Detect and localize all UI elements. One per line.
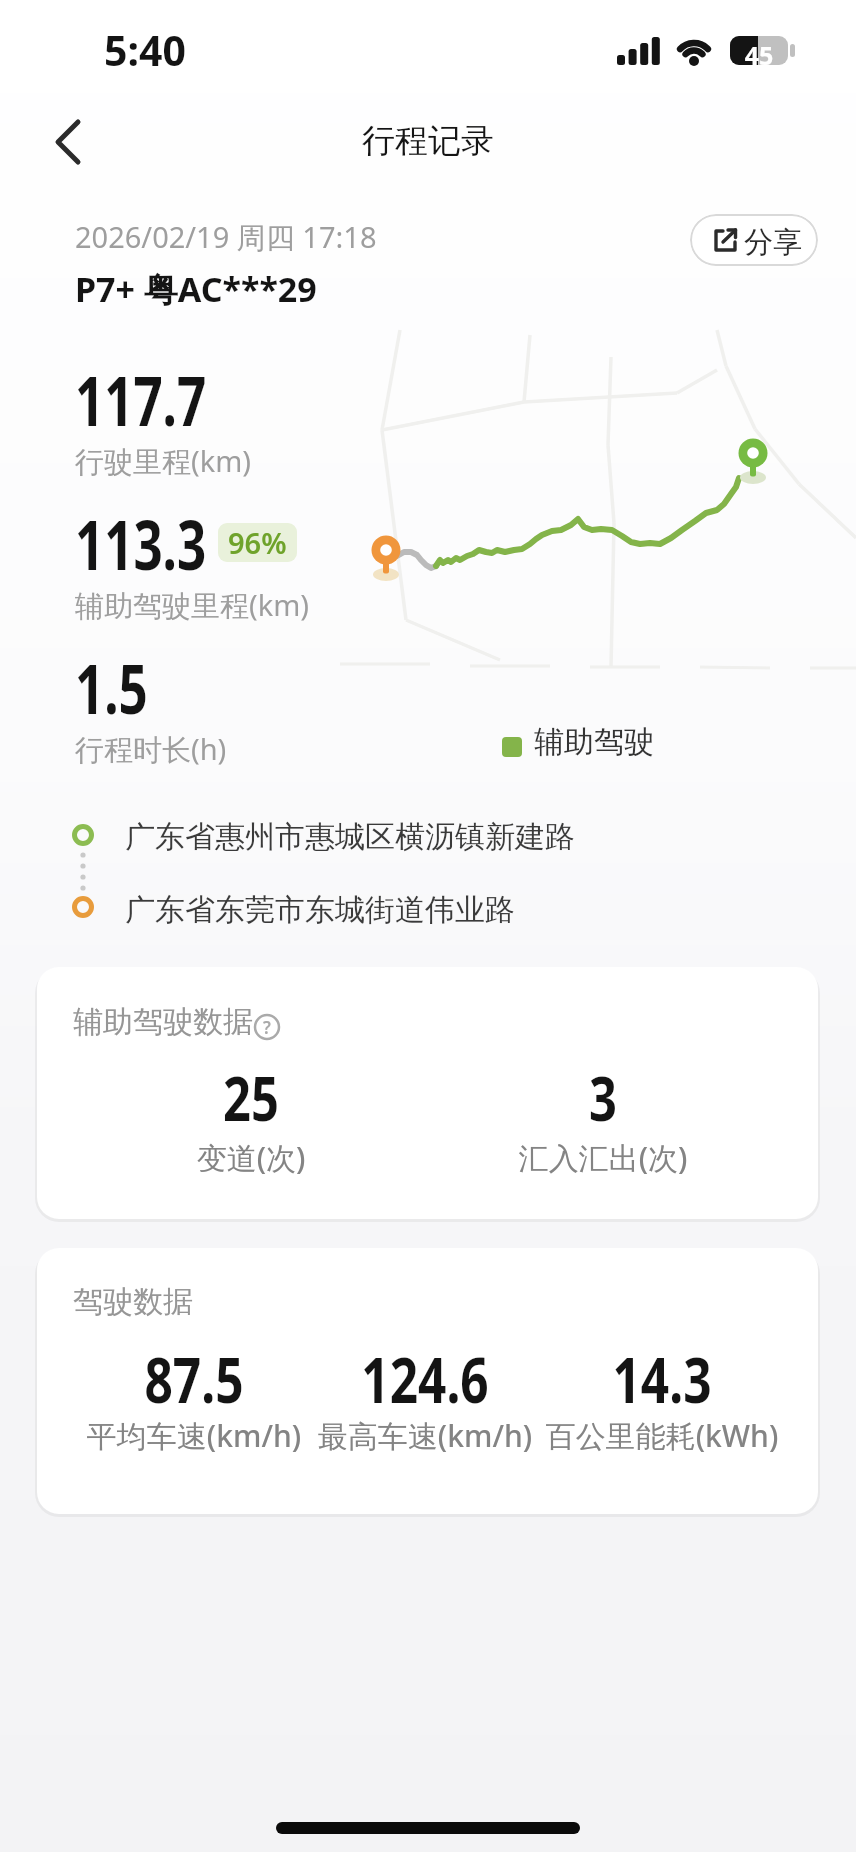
staticText: 124.6 [305, 1337, 545, 1421]
staticText: 驾驶数据 [73, 1283, 193, 1321]
staticText: 变道(次) [101, 1137, 401, 1178]
staticText: 汇入汇出(次) [453, 1137, 753, 1178]
staticText: 辅助驾驶 [534, 723, 654, 761]
staticText: 3 [483, 1056, 723, 1139]
staticText: 2026/02/19 周四 17:18 [75, 217, 377, 257]
staticText: 最高车速(km/h) [275, 1415, 575, 1456]
staticText: 45 [730, 38, 788, 72]
staticText: 行驶里程(km) [75, 441, 252, 481]
staticText: 辅助驾驶数据 [73, 1003, 253, 1041]
staticText: 平均车速(km/h) [44, 1415, 344, 1456]
staticText: 113.3 [75, 496, 207, 590]
staticText: 分享 [744, 224, 802, 261]
staticText: 广东省惠州市惠城区横沥镇新建路 [125, 818, 575, 856]
staticText: 广东省东莞市东城街道伟业路 [125, 891, 515, 929]
staticText: 行程记录 [0, 120, 856, 162]
staticText: ? [253, 1016, 281, 1039]
staticText: 5:40 [104, 22, 186, 78]
staticText: 25 [131, 1056, 371, 1139]
staticText: 14.3 [542, 1337, 782, 1421]
staticText: 百公里能耗(kWh) [512, 1415, 812, 1456]
staticText: 行程时长(h) [75, 729, 227, 769]
staticText: P7+ 粤AC***29 [75, 266, 317, 312]
staticText: 1.5 [75, 640, 148, 734]
staticText: 96% [228, 523, 287, 562]
staticText: 117.7 [75, 352, 207, 446]
staticText: 辅助驾驶里程(km) [75, 585, 310, 625]
staticText: 87.5 [74, 1337, 314, 1421]
